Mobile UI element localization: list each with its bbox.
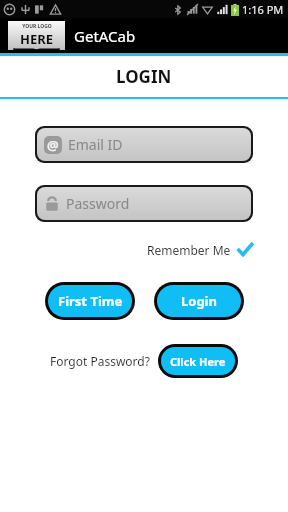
button[interactable]: Remember Me [0, 242, 252, 258]
staticText: Login [181, 292, 217, 310]
staticText: Click Here [170, 354, 226, 369]
button[interactable]: First Time [48, 285, 132, 317]
staticText: 1:16 PM [242, 2, 284, 17]
staticText: First Time [58, 292, 123, 310]
staticText: YOUR LOGO [22, 23, 52, 30]
button[interactable]: Password [37, 187, 251, 220]
staticText: Email ID [68, 135, 123, 154]
button[interactable]: @ [37, 128, 251, 161]
staticText: Forgot Password? [50, 353, 150, 369]
button[interactable]: Login [157, 285, 241, 317]
button[interactable]: Click Here [161, 347, 235, 375]
staticText: @ [47, 136, 59, 154]
staticText: GetACab [74, 26, 136, 46]
staticText: Remember Me [147, 242, 231, 258]
staticText: HERE [20, 30, 54, 48]
staticText: LOGIN [116, 65, 172, 88]
staticText: Password [66, 194, 130, 213]
